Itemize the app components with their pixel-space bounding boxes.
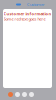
staticText: Some red text goes here	[3, 16, 45, 22]
staticText: Customer	[27, 2, 45, 7]
staticText: Customer information	[3, 11, 51, 16]
